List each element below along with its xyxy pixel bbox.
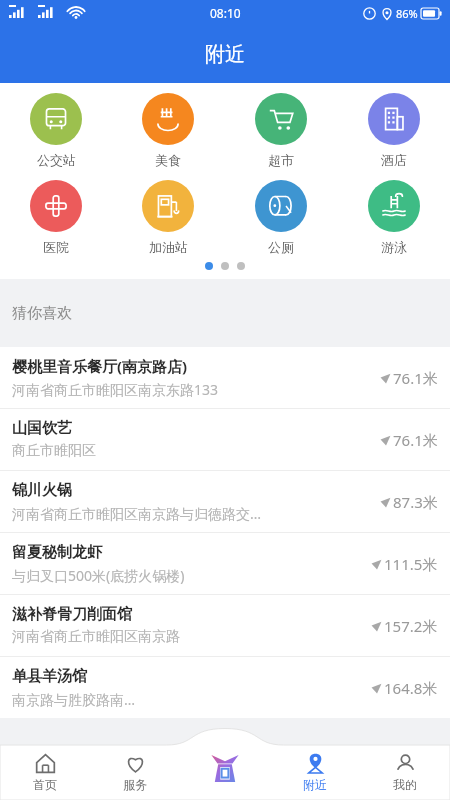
staticText: 樱桃里音乐餐厅(南京路店): [12, 356, 188, 376]
staticText: 157.2米: [384, 616, 438, 636]
button[interactable]: 滋补脊骨刀削面馆: [0, 595, 450, 656]
button[interactable]: 樱桃里音乐餐厅(南京路店): [0, 347, 450, 408]
staticText: 首页: [33, 777, 57, 792]
button[interactable]: 游泳: [337, 174, 450, 261]
staticText: 猜你喜欢: [12, 304, 72, 323]
staticText: 留夏秘制龙虾: [12, 543, 102, 562]
staticText: 08:10: [210, 5, 241, 21]
staticText: 山国饮艺: [12, 419, 72, 438]
staticText: 医院: [43, 239, 69, 255]
staticText: 服务: [123, 777, 147, 792]
staticText: 86%: [396, 6, 418, 21]
button[interactable]: 首页: [0, 745, 90, 800]
button[interactable]: 加油站: [112, 174, 224, 261]
staticText: 酒店: [381, 152, 407, 168]
staticText: 商丘市睢阳区: [12, 442, 96, 460]
staticText: 附近: [303, 777, 327, 792]
staticText: 76.1米: [393, 430, 438, 450]
button[interactable]: 附近: [270, 745, 360, 800]
button[interactable]: 超市: [224, 87, 337, 174]
staticText: 美食: [155, 152, 181, 168]
staticText: 河南省商丘市睢阳区南京路与归德路交…: [12, 504, 262, 523]
staticText: 单县羊汤馆: [12, 667, 87, 686]
button[interactable]: 服务: [90, 745, 180, 800]
button[interactable]: 医院: [0, 174, 112, 261]
staticText: 南京路与胜胶路南…: [12, 690, 136, 709]
staticText: 164.8米: [384, 678, 438, 698]
staticText: 87.3米: [393, 492, 438, 512]
staticText: 游泳: [381, 239, 407, 255]
staticText: 河南省商丘市睢阳区南京东路133: [12, 380, 219, 399]
staticText: 附近: [205, 42, 245, 67]
staticText: 公交站: [37, 152, 76, 168]
staticText: 76.1米: [393, 368, 438, 388]
staticText: 滋补脊骨刀削面馆: [12, 605, 132, 624]
button[interactable]: 留夏秘制龙虾: [0, 533, 450, 594]
staticText: 公厕: [268, 239, 294, 255]
staticText: 与归叉口500米(底捞火锅楼): [12, 566, 185, 585]
staticText: 加油站: [149, 239, 188, 255]
staticText: 锦川火锅: [12, 481, 72, 500]
button[interactable]: 锦川火锅: [0, 471, 450, 532]
button[interactable]: 公厕: [224, 174, 337, 261]
staticText: 我的: [393, 777, 417, 792]
button[interactable]: 山国饮艺: [0, 409, 450, 470]
button[interactable]: 我的: [360, 745, 450, 800]
button[interactable]: 单县羊汤馆: [0, 657, 450, 718]
button[interactable]: 公交站: [0, 87, 112, 174]
staticText: 111.5米: [384, 554, 438, 574]
button[interactable]: 发现: [180, 745, 270, 800]
staticText: 河南省商丘市睢阳区南京路: [12, 628, 180, 646]
staticText: 超市: [268, 152, 294, 168]
button[interactable]: 美食: [112, 87, 224, 174]
button[interactable]: 酒店: [337, 87, 450, 174]
